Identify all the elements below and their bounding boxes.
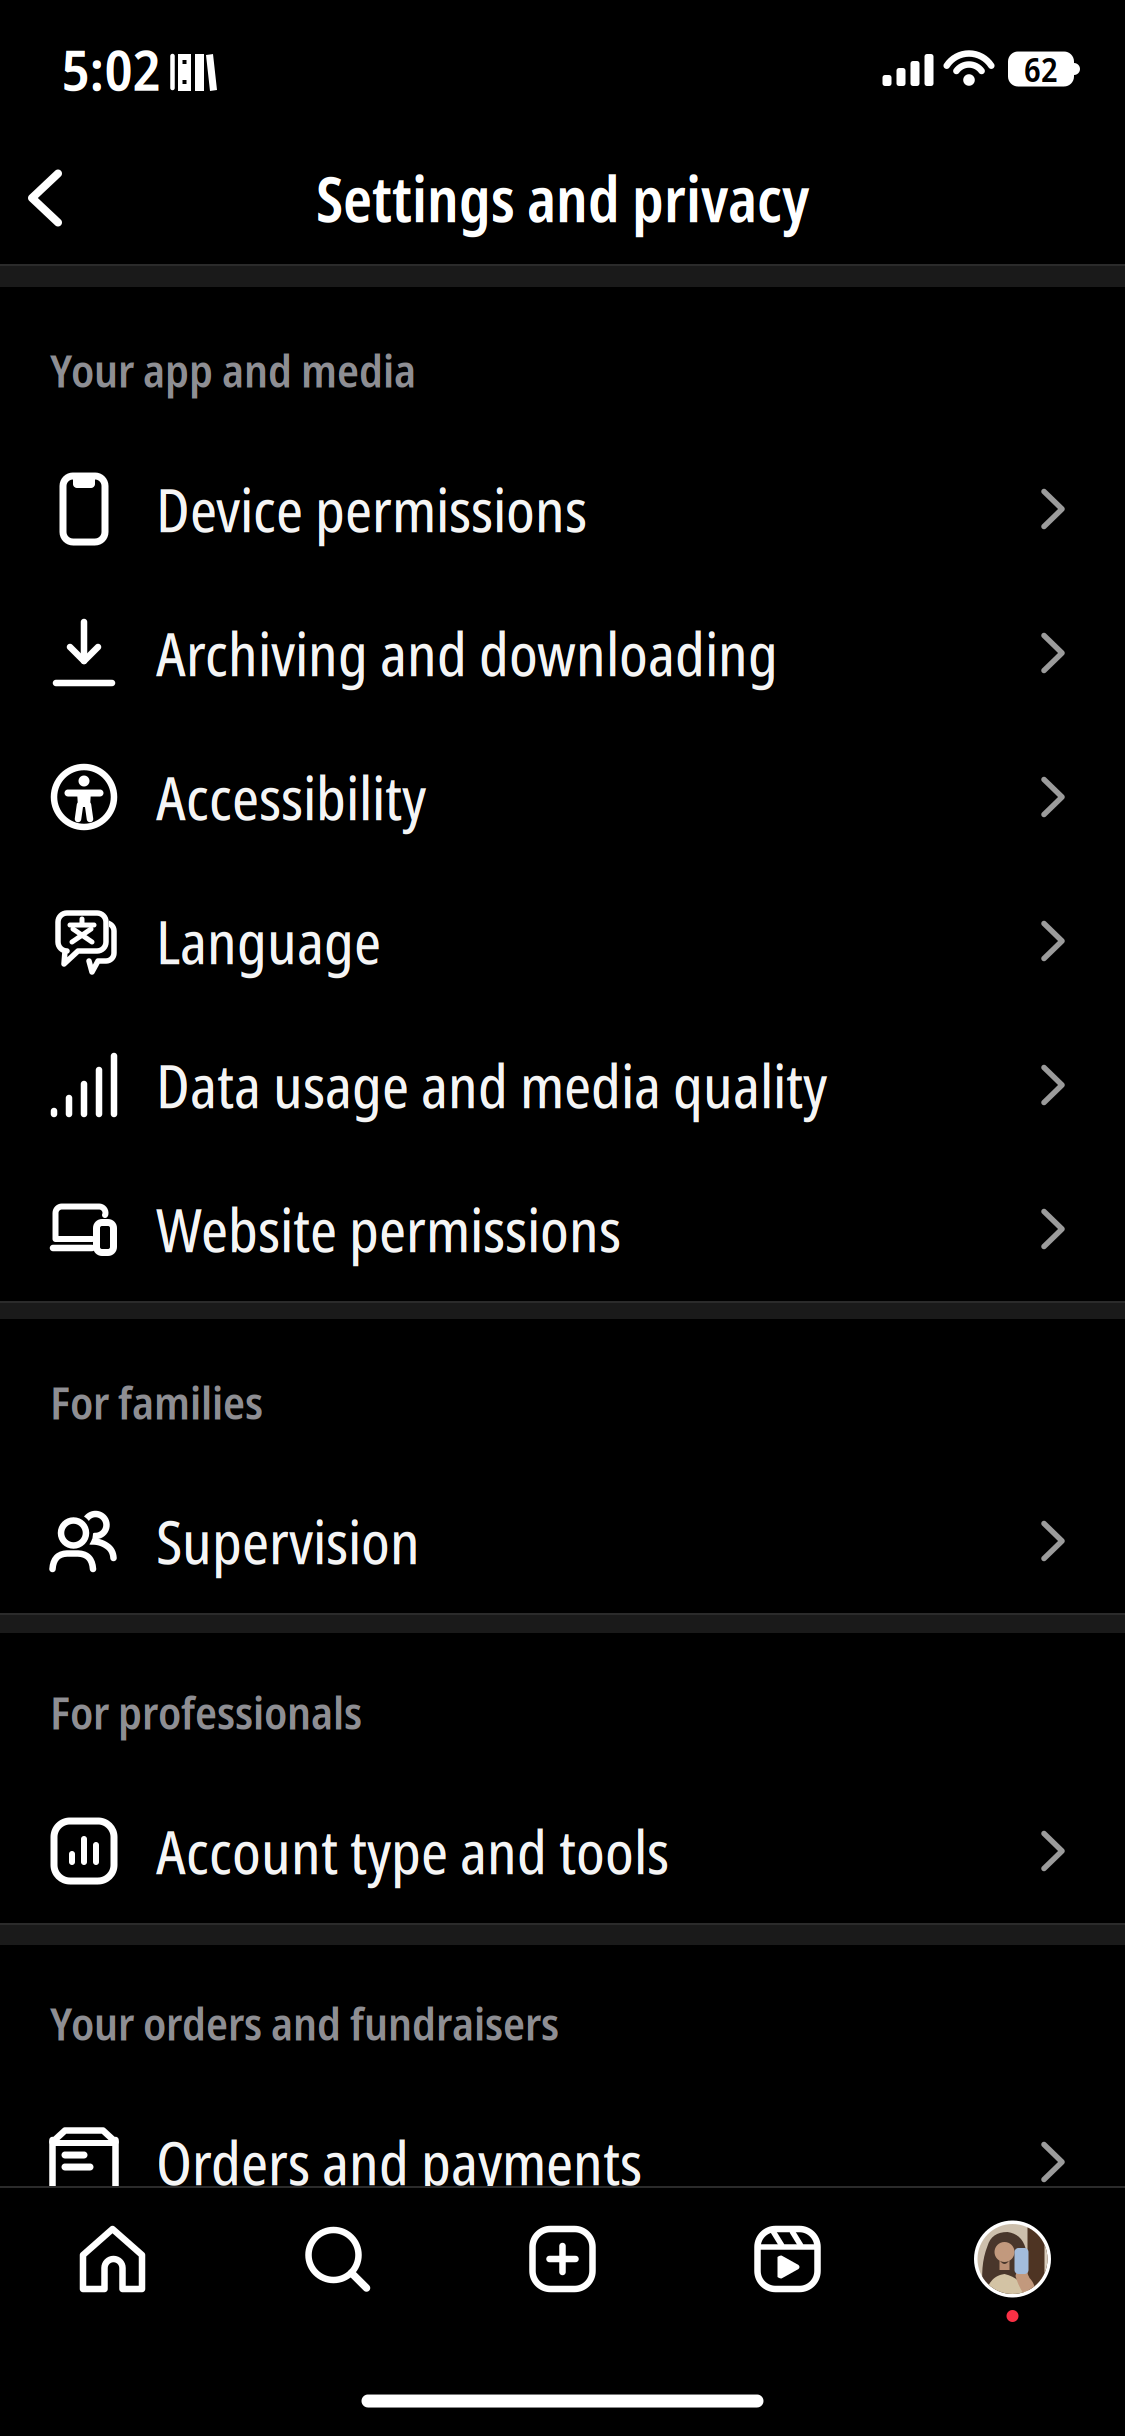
- staticText: Account type and tools: [156, 1810, 669, 1892]
- staticText: Archiving and downloading: [156, 612, 778, 694]
- button[interactable]: Accessibility: [0, 725, 1125, 869]
- button[interactable]: Profile: [932, 2204, 1092, 2314]
- staticText: Orders and payments: [156, 2121, 642, 2203]
- staticText: For families: [50, 1371, 263, 1433]
- staticText: For professionals: [50, 1681, 362, 1743]
- button[interactable]: Back: [0, 169, 62, 226]
- button[interactable]: Device permissions: [0, 437, 1125, 581]
- button[interactable]: Reels: [707, 2204, 867, 2314]
- button[interactable]: Account type and tools: [0, 1779, 1125, 1923]
- staticText: Device permissions: [156, 468, 587, 550]
- button[interactable]: Website permissions: [0, 1157, 1125, 1301]
- button[interactable]: Language: [0, 869, 1125, 1013]
- staticText: Website permissions: [156, 1188, 621, 1270]
- button[interactable]: Create: [482, 2204, 642, 2314]
- button[interactable]: Archiving and downloading: [0, 581, 1125, 725]
- staticText: Supervision: [156, 1500, 420, 1582]
- staticText: Language: [156, 900, 381, 982]
- button[interactable]: Supervision: [0, 1469, 1125, 1613]
- staticText: 62: [1024, 46, 1058, 92]
- staticText: Settings and privacy: [316, 155, 809, 241]
- staticText: Your orders and fundraisers: [50, 1992, 559, 2054]
- button[interactable]: Orders and payments: [0, 2090, 1125, 2234]
- button[interactable]: Home: [32, 2204, 192, 2314]
- staticText: Your app and media: [50, 339, 416, 401]
- staticText: Accessibility: [156, 756, 426, 838]
- staticText: Data usage and media quality: [156, 1044, 827, 1126]
- staticText: 5:02: [61, 31, 160, 107]
- button[interactable]: Search: [257, 2204, 417, 2314]
- button[interactable]: Data usage and media quality: [0, 1013, 1125, 1157]
